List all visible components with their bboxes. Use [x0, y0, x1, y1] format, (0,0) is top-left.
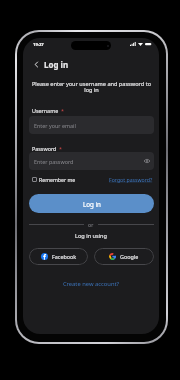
- button[interactable]: Forgot password?: [109, 176, 153, 183]
- staticText: Username: [32, 107, 59, 114]
- button[interactable]: Create new account?: [23, 280, 159, 288]
- button[interactable]: Facebook: [29, 248, 88, 265]
- staticText: Log in using: [23, 232, 159, 240]
- button[interactable]: Remember me: [32, 176, 76, 183]
- staticText: Enter password: [34, 158, 74, 165]
- staticText: Google: [120, 253, 139, 260]
- button[interactable]: Log in: [29, 194, 154, 213]
- staticText: *: [61, 107, 64, 114]
- staticText: Remember me: [39, 176, 76, 183]
- staticText: or: [88, 221, 94, 228]
- button[interactable]: Enter your email: [29, 116, 154, 134]
- staticText: Log in: [83, 200, 101, 208]
- staticText: 19:27: [33, 42, 44, 48]
- staticText: Password: [32, 145, 57, 152]
- staticText: Log in: [44, 59, 69, 70]
- button[interactable]: Google: [94, 248, 154, 265]
- button[interactable]: Back: [31, 59, 41, 69]
- staticText: Facebook: [52, 253, 77, 260]
- staticText: *: [59, 145, 62, 152]
- button[interactable]: Show password: [144, 159, 150, 163]
- button[interactable]: Enter password: [29, 152, 154, 170]
- staticText: Please enter your username and password …: [29, 80, 154, 94]
- staticText: Enter your email: [34, 122, 76, 129]
